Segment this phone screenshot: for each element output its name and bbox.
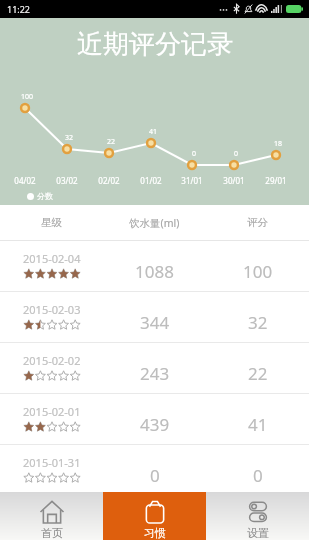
staticText: 2015-02-01 <box>23 404 81 419</box>
staticText: 03/02 <box>47 175 87 186</box>
staticText: 2015-02-04 <box>23 251 81 266</box>
staticText: 41 <box>133 127 173 137</box>
button[interactable]: 2015-02-03 <box>0 292 309 342</box>
staticText: 首页 <box>41 526 63 540</box>
staticText: 2015-02-02 <box>23 353 81 368</box>
staticText: 01/02 <box>131 175 171 186</box>
staticText: 18 <box>258 139 298 149</box>
button[interactable]: 习惯 <box>103 492 206 540</box>
staticText: 32 <box>248 311 268 334</box>
staticText: 30/01 <box>214 175 254 186</box>
staticText: 29/01 <box>256 175 296 186</box>
staticText: 344 <box>140 311 170 334</box>
staticText: 100 <box>7 92 47 102</box>
staticText: 设置 <box>247 526 269 540</box>
staticText: 0 <box>174 149 214 159</box>
staticText: 0 <box>216 149 256 159</box>
staticText: 1088 <box>135 260 174 283</box>
staticText: 32 <box>49 133 89 143</box>
staticText: 11:22 <box>7 3 31 15</box>
staticText: 习惯 <box>144 526 166 540</box>
staticText: 439 <box>140 413 170 436</box>
staticText: 2015-01-31 <box>23 455 81 470</box>
staticText: 分数 <box>37 191 53 201</box>
button[interactable]: 2015-02-02 <box>0 343 309 393</box>
button[interactable]: 2015-02-01 <box>0 394 309 444</box>
staticText: 04/02 <box>5 175 45 186</box>
staticText: 02/02 <box>89 175 129 186</box>
staticText: 243 <box>140 362 170 385</box>
staticText: 22 <box>91 137 131 147</box>
staticText: 饮水量(ml) <box>129 216 180 230</box>
button[interactable]: 首页 <box>0 492 103 540</box>
staticText: 41 <box>248 413 268 436</box>
staticText: 0 <box>253 464 263 487</box>
staticText: 22 <box>248 362 268 385</box>
button[interactable]: 设置 <box>206 492 309 540</box>
staticText: 2015-02-03 <box>23 302 81 317</box>
staticText: 星级 <box>41 216 62 229</box>
staticText: 评分 <box>247 216 268 229</box>
staticText: 近期评分记录 <box>77 28 233 61</box>
staticText: 31/01 <box>172 175 212 186</box>
button[interactable]: 2015-01-31 <box>0 445 309 495</box>
staticText: 0 <box>150 464 160 487</box>
button[interactable]: 2015-02-04 <box>0 241 309 291</box>
staticText: 100 <box>243 260 273 283</box>
